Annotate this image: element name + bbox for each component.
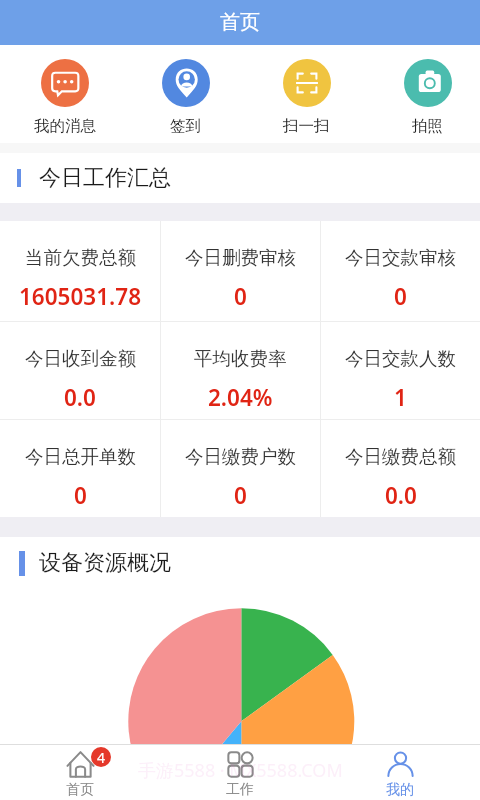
button[interactable]: 今日缴费户数 [161,420,320,517]
staticText: 0.0 [64,382,96,413]
staticText: 0 [234,480,247,511]
staticText: 今日交款人数 [345,347,456,370]
button[interactable]: 当前欠费总额 [0,221,160,321]
staticText: 我的 [386,781,414,799]
staticText: 设备资源概况 [39,549,171,577]
button[interactable]: 平均收费率 [161,322,320,419]
staticText: 今日删费审核 [185,246,296,269]
staticText: 今日工作汇总 [39,164,171,192]
button[interactable]: 今日收到金额 [0,322,160,419]
button[interactable]: Home [0,745,160,800]
staticText: 平均收费率 [194,347,287,370]
staticText: 首页 [220,10,260,35]
staticText: 当前欠费总额 [25,246,136,269]
staticText: 0 [74,480,87,511]
staticText: 我的消息 [34,116,96,136]
button[interactable]: 今日缴费总额 [321,420,480,517]
button[interactable]: Profile [320,745,480,800]
staticText: 今日交款审核 [345,246,456,269]
staticText: 今日收到金额 [25,347,136,370]
button[interactable]: 扫一扫 [246,59,367,136]
button[interactable]: 拍照 [367,59,480,136]
staticText: 今日缴费总额 [345,445,456,468]
staticText: 今日总开单数 [25,445,136,468]
button[interactable]: 今日删费审核 [161,221,320,321]
staticText: 4 [97,748,106,767]
staticText: 拍照 [412,116,443,136]
staticText: 1 [394,382,407,413]
staticText: 0 [394,281,407,312]
staticText: 0.0 [385,480,417,511]
staticText: 0 [234,281,247,312]
staticText: 手游5588 · MX5588.COM [138,758,343,783]
staticText: 扫一扫 [283,116,330,136]
button[interactable]: 今日总开单数 [0,420,160,517]
staticText: 2.04% [208,382,273,413]
staticText: 工作 [226,781,254,799]
staticText: 今日缴费户数 [185,445,296,468]
staticText: 签到 [170,116,201,136]
button[interactable]: 签到 [125,59,246,136]
button[interactable]: 今日交款人数 [321,322,480,419]
staticText: 1605031.78 [19,281,142,312]
staticText: 首页 [66,781,94,799]
button[interactable]: 今日交款审核 [321,221,480,321]
button[interactable]: 我的消息 [4,59,125,136]
button[interactable]: Work [160,745,320,800]
